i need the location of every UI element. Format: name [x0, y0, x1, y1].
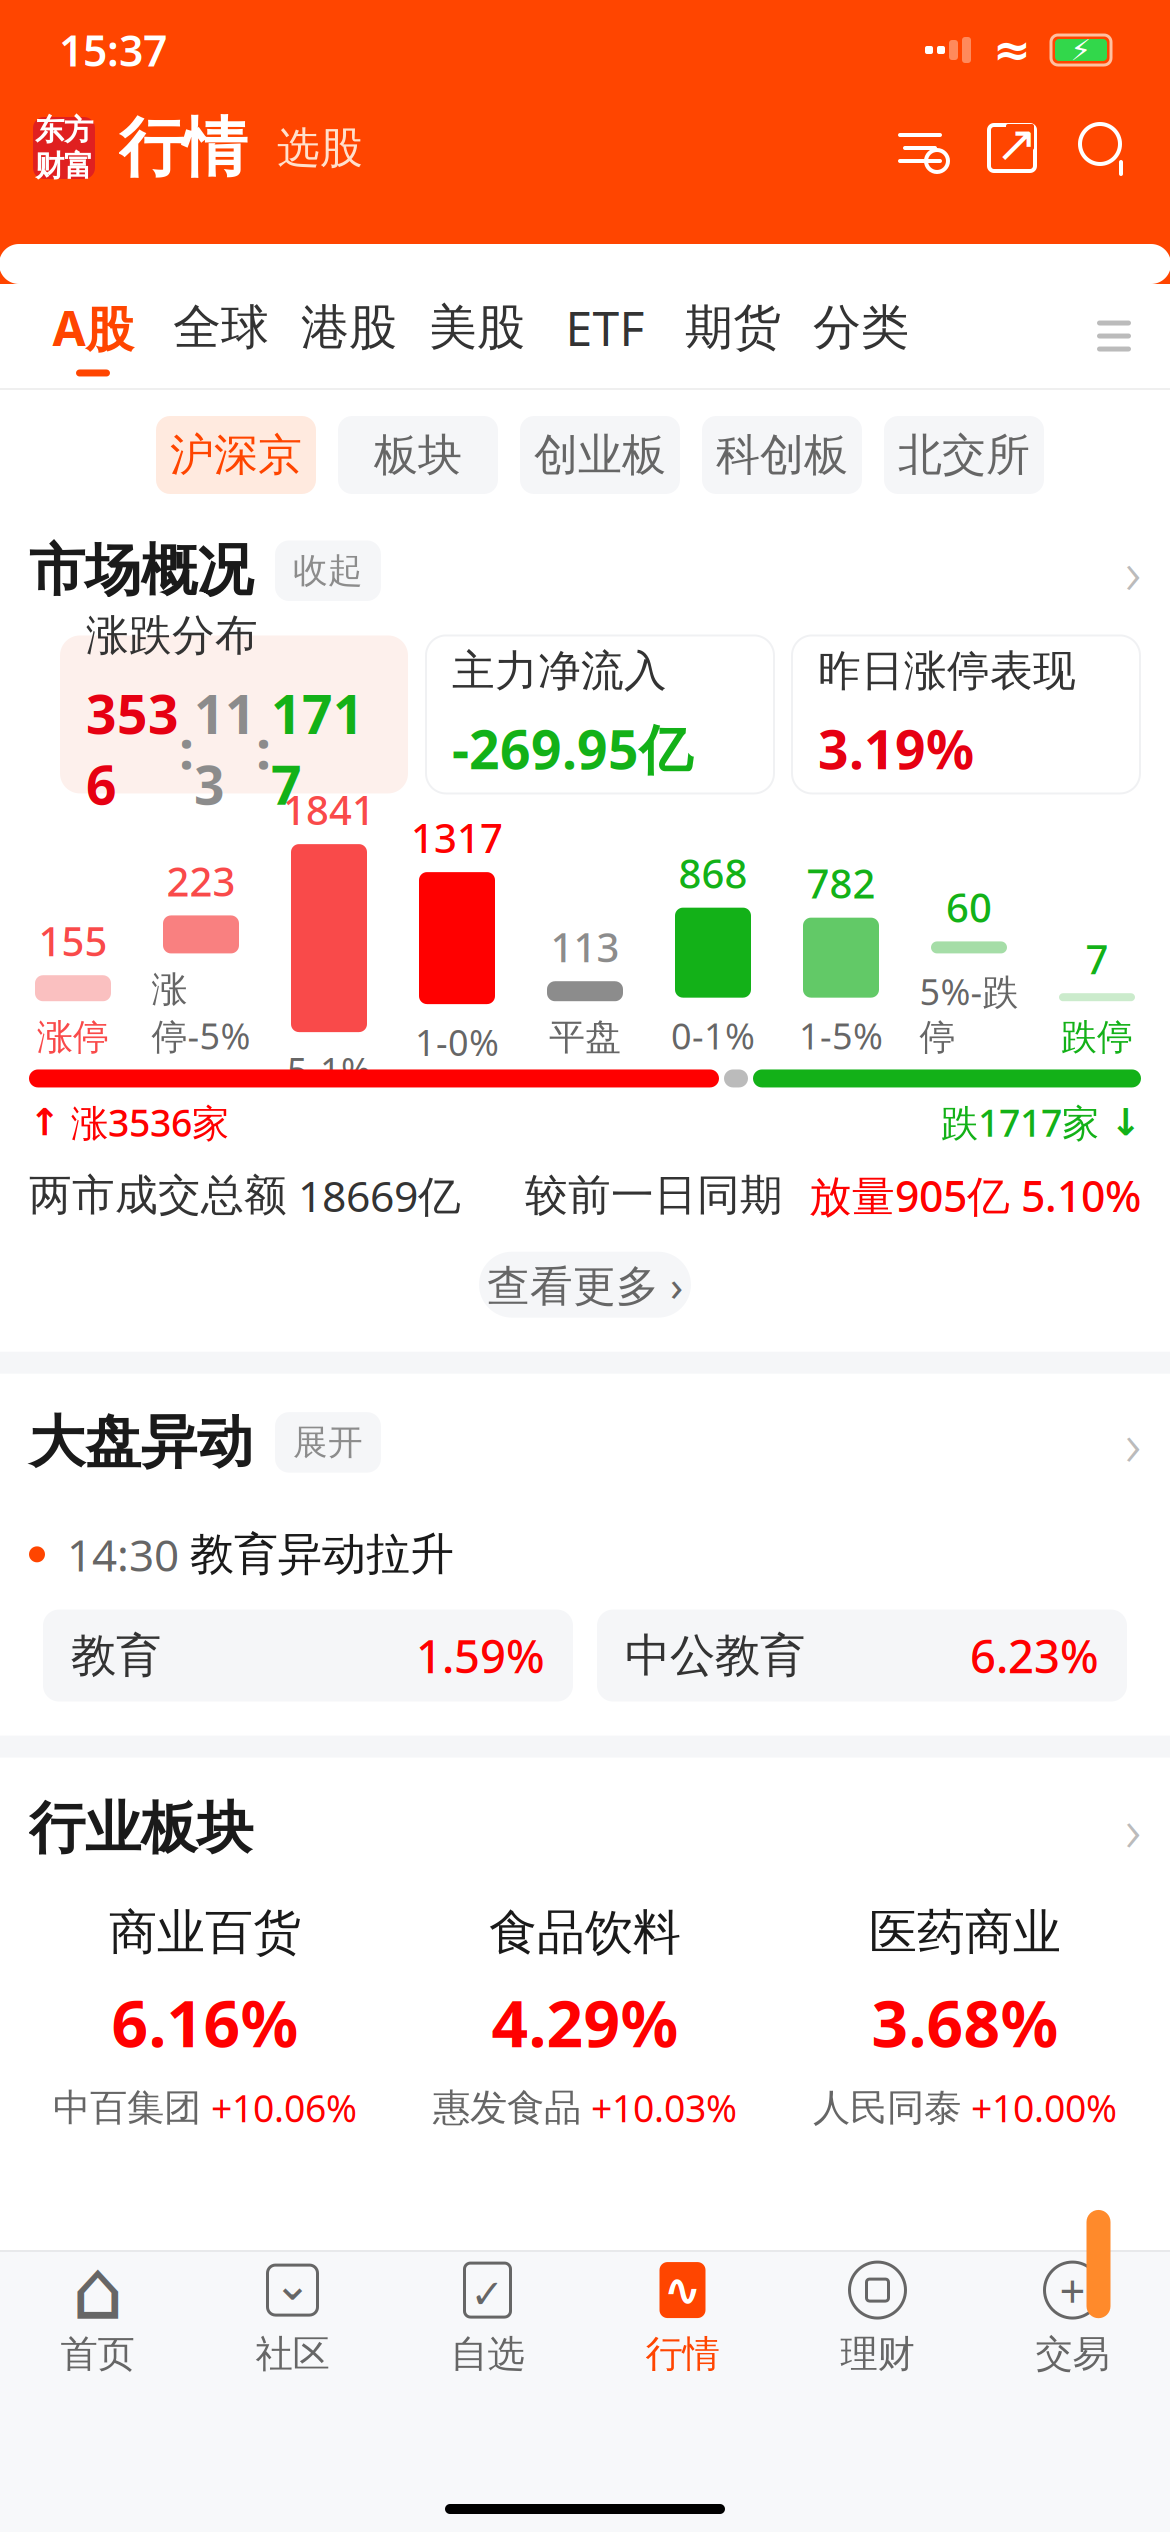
staticText: ⚡︎: [1070, 33, 1091, 67]
button[interactable]: 中公教育: [597, 1610, 1127, 1702]
button[interactable]: 食品饮料: [395, 1903, 775, 2132]
staticText: +10.06%: [211, 2083, 357, 2133]
staticText: 5-1%: [287, 1046, 371, 1094]
button[interactable]: A股: [29, 284, 157, 388]
staticText: ↓: [1110, 1101, 1141, 1143]
button[interactable]: 理财: [780, 2252, 975, 2382]
button[interactable]: 沪深京: [156, 416, 316, 494]
staticText: 6.16%: [111, 1980, 298, 2065]
button[interactable]: ETF: [541, 284, 669, 388]
staticText: 收起: [293, 549, 363, 592]
button[interactable]: 科创板: [702, 416, 862, 494]
button[interactable]: 全部分类: [1079, 284, 1149, 388]
staticText: 3.68%: [871, 1980, 1058, 2065]
staticText: ✓: [470, 2271, 504, 2317]
staticText: 3.19%: [818, 713, 974, 784]
staticText: 15:37: [59, 22, 167, 78]
button[interactable]: 创业板: [520, 416, 680, 494]
staticText: ⌂: [71, 2243, 123, 2337]
staticText: 涨停: [37, 1015, 109, 1059]
staticText: 沪深京: [170, 428, 302, 482]
button[interactable]: 商业百货: [15, 1903, 395, 2132]
staticText: +: [1059, 2260, 1085, 2320]
button[interactable]: 选股: [247, 122, 363, 174]
staticText: 社区: [255, 2331, 329, 2377]
button[interactable]: 市场概况: [0, 530, 1170, 611]
staticText: 7: [1085, 932, 1108, 985]
staticText: 868: [678, 846, 747, 900]
staticText: 查看更多 ›: [487, 1256, 683, 1313]
button[interactable]: 筛选设置: [887, 115, 953, 181]
staticText: 跌停: [1061, 1015, 1133, 1059]
staticText: 113: [550, 920, 619, 973]
button[interactable]: 搜索: [1071, 115, 1137, 181]
staticText: 涨停-5%: [151, 967, 250, 1059]
staticText: 美股: [429, 298, 525, 357]
button[interactable]: 港股: [285, 284, 413, 388]
staticText: 大盘异动: [29, 1408, 253, 1477]
staticText: 60: [946, 880, 992, 933]
staticText: 分类: [813, 298, 909, 357]
button[interactable]: 全球: [157, 284, 285, 388]
staticText: ›: [1125, 1402, 1141, 1483]
staticText: 北交所: [898, 428, 1030, 482]
staticText: 1.59%: [416, 1625, 545, 1686]
staticText: 223: [166, 854, 235, 907]
button[interactable]: 医药商业: [775, 1903, 1155, 2132]
button[interactable]: 昨日涨停表现: [792, 635, 1140, 793]
staticText: :: [256, 713, 271, 784]
button[interactable]: 行业板块: [0, 1788, 1170, 1869]
staticText: 板块: [374, 428, 462, 482]
button[interactable]: 板块: [338, 416, 498, 494]
button[interactable]: 分享: [979, 115, 1045, 181]
staticText: 涨3536家: [60, 1097, 229, 1147]
staticText: 放量905亿 5.10%: [783, 1167, 1141, 1224]
button[interactable]: 查看更多 ›: [479, 1252, 691, 1318]
button[interactable]: 涨跌分布: [60, 635, 408, 793]
staticText: +10.00%: [971, 2083, 1117, 2133]
staticText: ›: [1125, 1788, 1141, 1869]
staticText: 理财: [840, 2331, 914, 2377]
button[interactable]: ⌄: [195, 2252, 390, 2382]
staticText: 人民同泰: [813, 2085, 961, 2131]
staticText: 平盘: [549, 1015, 621, 1059]
button[interactable]: 北交所: [884, 416, 1044, 494]
staticText: 展开: [293, 1421, 363, 1464]
staticText: 1-5%: [799, 1012, 883, 1059]
button[interactable]: ∿: [585, 2252, 780, 2382]
staticText: ≈: [993, 24, 1031, 76]
staticText: ⌄: [273, 2258, 311, 2310]
staticText: -269.95亿: [452, 713, 692, 784]
staticText: 全球: [173, 298, 269, 357]
button[interactable]: ✓: [390, 2252, 585, 2382]
button[interactable]: 大盘异动: [0, 1402, 1170, 1483]
staticText: 创业板: [534, 428, 666, 482]
staticText: 18669亿: [287, 1167, 461, 1224]
button[interactable]: 美股: [413, 284, 541, 388]
staticText: 1-0%: [415, 1018, 499, 1066]
staticText: +10.03%: [591, 2083, 737, 2133]
button[interactable]: 期货: [669, 284, 797, 388]
staticText: 行情: [119, 109, 247, 187]
staticText: 期货: [685, 298, 781, 357]
staticText: ›: [1125, 530, 1141, 611]
staticText: 交易: [1035, 2331, 1109, 2377]
staticText: 主力净流入: [452, 645, 667, 697]
button[interactable]: 教育: [43, 1610, 573, 1702]
staticText: 自选: [450, 2331, 524, 2377]
staticText: 1717: [271, 678, 364, 819]
staticText: 昨日涨停表现: [818, 645, 1076, 697]
staticText: 4.29%: [491, 1980, 678, 2065]
staticText: ↗: [995, 115, 1037, 173]
button[interactable]: 分类: [797, 284, 925, 388]
staticText: 涨跌分布: [86, 609, 258, 662]
staticText: 商业百货: [109, 1903, 301, 1962]
staticText: 医药商业: [869, 1903, 1061, 1962]
staticText: ETF: [565, 296, 644, 359]
staticText: 113: [194, 678, 256, 819]
button[interactable]: ⌂: [0, 2252, 195, 2382]
staticText: 1317: [411, 811, 503, 864]
button[interactable]: +: [975, 2252, 1170, 2382]
staticText: 东方: [35, 112, 93, 148]
button[interactable]: 主力净流入: [426, 635, 774, 793]
